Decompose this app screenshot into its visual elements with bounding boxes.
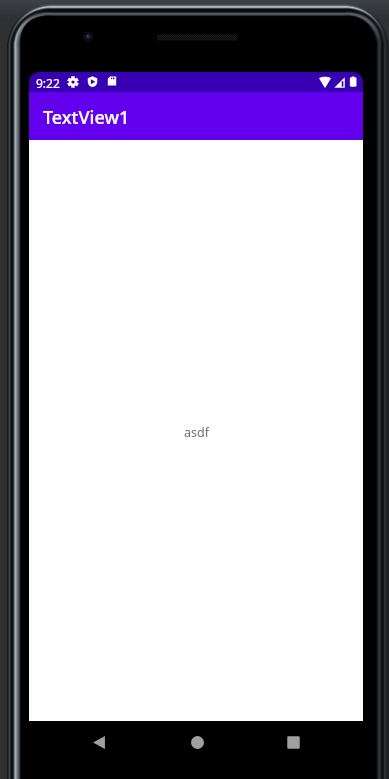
staticText: 9:22 [36,75,60,91]
button[interactable]: TextView1 [29,92,363,140]
staticText: asdf [184,424,209,441]
staticText: TextView1 [43,105,130,130]
button[interactable]: Back [85,728,113,756]
button[interactable]: Home [183,728,211,756]
button[interactable]: Recent apps [279,728,307,756]
